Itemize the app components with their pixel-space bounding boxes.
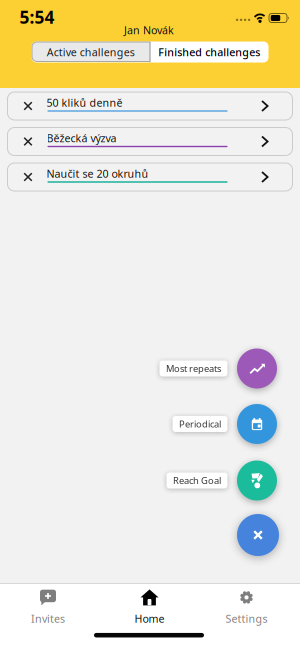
staticText: Home: [134, 611, 164, 626]
staticText: Settings: [225, 611, 267, 626]
button[interactable]: Naučit se 20 okruhů: [7, 163, 292, 191]
button[interactable]: 50 kliků denně: [7, 92, 292, 120]
button[interactable]: Periodical: [237, 404, 277, 444]
staticText: Naučit se 20 okruhů: [46, 166, 148, 181]
staticText: Jan Novák: [124, 23, 174, 37]
staticText: Most repeats: [166, 362, 221, 375]
button[interactable]: Settings: [196, 587, 296, 627]
staticText: Finished challenges: [158, 45, 260, 59]
button[interactable]: Invites: [0, 587, 98, 627]
button[interactable]: Finished challenges: [150, 41, 268, 62]
button[interactable]: Reach Goal: [237, 460, 277, 500]
button[interactable]: Běžecká výzva: [7, 127, 292, 155]
button[interactable]: Home: [99, 587, 199, 627]
staticText: Běžecká výzva: [46, 131, 116, 145]
staticText: Invites: [31, 611, 65, 626]
button[interactable]: Most repeats: [237, 348, 277, 388]
button[interactable]: Active challenges: [31, 41, 150, 62]
button[interactable]: Close: [237, 514, 279, 556]
staticText: Reach Goal: [173, 474, 221, 487]
staticText: 5:54: [19, 5, 54, 28]
button[interactable]: Delete challenge: [8, 92, 48, 120]
staticText: Active challenges: [47, 45, 135, 59]
button[interactable]: Delete challenge: [8, 127, 48, 155]
button[interactable]: Delete challenge: [8, 163, 48, 191]
staticText: Periodical: [179, 418, 221, 430]
staticText: 50 kliků denně: [46, 95, 122, 110]
